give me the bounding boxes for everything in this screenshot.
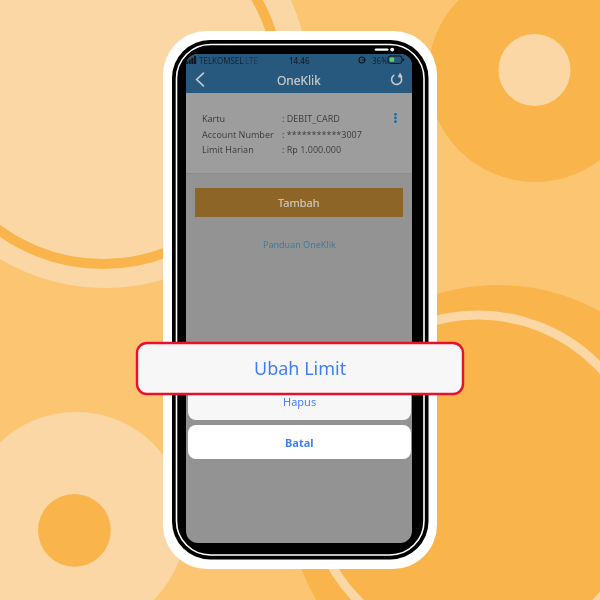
staticText: 36% (372, 55, 388, 66)
staticText: Account Number (202, 128, 274, 140)
button[interactable]: Back (189, 66, 213, 93)
button[interactable]: Tambah (195, 188, 403, 217)
staticText: : Rp 1.000.000 (282, 143, 342, 155)
button[interactable]: Hapus (188, 343, 411, 420)
staticText: : ***********3007 (282, 128, 362, 140)
staticText: OneKlik (277, 72, 321, 88)
staticText: Tambah (278, 195, 320, 210)
staticText: : DEBIT_CARD (282, 112, 340, 124)
staticText: Batal (285, 435, 314, 450)
button[interactable]: Ubah Limit (137, 343, 463, 394)
button[interactable]: Refresh (385, 66, 409, 93)
button[interactable]: More options (387, 111, 404, 129)
button[interactable]: Panduan OneKlik (263, 238, 336, 250)
staticText: TELKOMSEL (199, 55, 244, 66)
button[interactable]: Batal (188, 425, 411, 459)
staticText: Hapus (283, 394, 317, 409)
staticText: Limit Harian (202, 143, 254, 155)
staticText: 14.46 (289, 55, 310, 66)
staticText: Kartu (202, 112, 226, 124)
staticText: Ubah Limit (254, 356, 347, 381)
staticText: LTE (245, 55, 258, 66)
